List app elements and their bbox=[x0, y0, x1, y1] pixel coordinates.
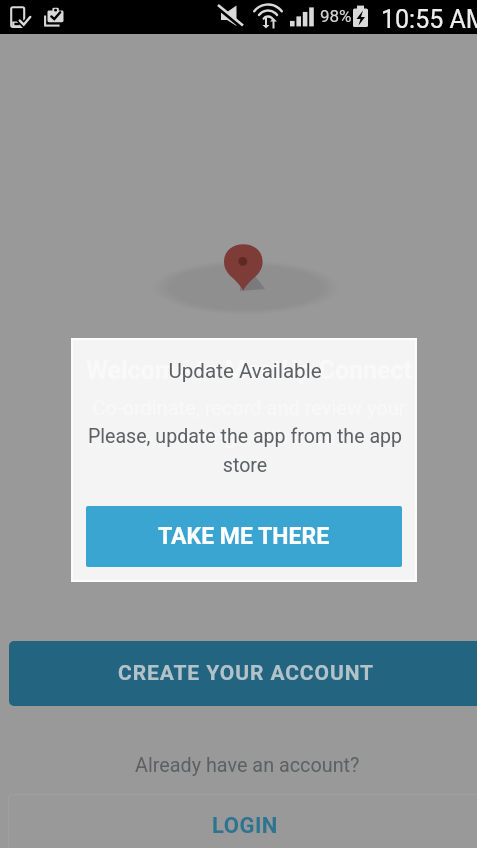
staticText: Co-ordinate, record and review your meet… bbox=[76, 396, 422, 449]
button[interactable]: TAKE ME THERE bbox=[86, 506, 402, 567]
staticText: 98% bbox=[320, 6, 352, 26]
staticText: CREATE YOUR ACCOUNT bbox=[118, 661, 374, 686]
staticText: Already have an account? bbox=[135, 754, 360, 777]
staticText: TAKE ME THERE bbox=[158, 523, 330, 550]
staticText: 10:55 AM bbox=[381, 5, 477, 34]
staticText: Update Available bbox=[72, 359, 418, 383]
staticText: LOGIN bbox=[212, 813, 278, 839]
button[interactable]: LOGIN bbox=[8, 794, 477, 848]
staticText: Please, update the app from the app stor… bbox=[84, 425, 406, 477]
button[interactable]: CREATE YOUR ACCOUNT bbox=[9, 641, 477, 706]
staticText: Welcome to MeetUp Connect bbox=[76, 356, 422, 385]
